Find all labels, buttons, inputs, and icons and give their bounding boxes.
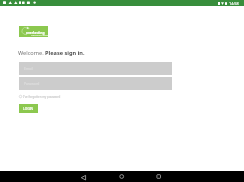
staticText: I've forgotten my password <box>23 95 61 99</box>
button[interactable]: LOGIN <box>19 104 38 113</box>
staticText: LOGIN <box>23 107 34 111</box>
staticText: Welcome. Please sign in. <box>18 49 85 57</box>
button[interactable]: Home <box>107 171 135 182</box>
staticText: THE NATURAL CHOICE <box>31 34 49 36</box>
staticText: Password <box>24 81 40 86</box>
staticText: 14:58 <box>229 1 239 6</box>
button[interactable]: I've forgotten my password <box>19 93 61 100</box>
staticText: everlasting <box>26 30 45 34</box>
staticText: Email <box>24 66 33 71</box>
button[interactable]: Back <box>69 171 97 182</box>
button[interactable]: Recent apps <box>144 171 172 182</box>
